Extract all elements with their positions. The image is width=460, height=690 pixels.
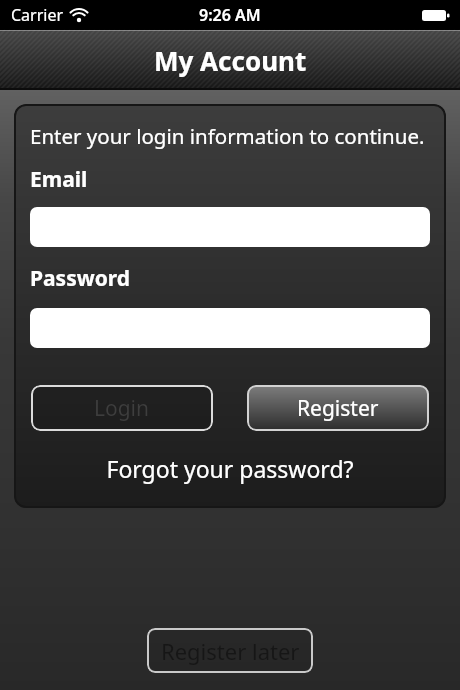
staticText: Login <box>94 394 150 423</box>
staticText: Email <box>30 165 88 194</box>
button[interactable]: Register later <box>147 628 313 673</box>
staticText: Register <box>297 394 379 423</box>
button[interactable]: Login <box>31 385 213 431</box>
staticText: Register later <box>161 636 300 666</box>
staticText: 9:26 AM <box>199 4 261 26</box>
staticText: Password <box>30 264 131 293</box>
button[interactable] <box>30 308 430 348</box>
staticText: My Account <box>154 43 307 78</box>
button[interactable]: Register <box>247 385 429 431</box>
button[interactable] <box>30 207 430 247</box>
button[interactable]: Forgot your password? <box>14 453 446 484</box>
staticText: Carrier <box>11 4 64 26</box>
staticText: Enter your login information to continue… <box>30 122 425 150</box>
